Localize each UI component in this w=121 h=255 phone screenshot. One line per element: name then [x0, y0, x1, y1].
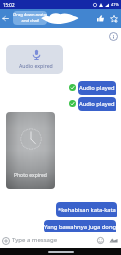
- staticText: *kehabisan kata-kata: [58, 206, 116, 214]
- staticText: Audio expired: [19, 62, 53, 69]
- button[interactable]: Send: [108, 235, 119, 246]
- button[interactable]: Audio expired: [6, 45, 63, 74]
- button[interactable]: Emoji: [96, 236, 105, 245]
- staticText: Type a message: [12, 236, 58, 244]
- button[interactable]: Like: [96, 14, 105, 23]
- button[interactable]: Audio played: [78, 97, 116, 111]
- staticText: 15:02: [3, 2, 15, 8]
- button[interactable]: Audio played: [78, 81, 116, 95]
- button[interactable]: Yang bawahnya juga dong: [44, 220, 116, 233]
- staticText: Yang bawahnya juga dong: [44, 223, 116, 231]
- button[interactable]: Photo expired: [6, 112, 55, 189]
- button[interactable]: Drag down avatar and chat!: [13, 11, 47, 25]
- staticText: 41%: [111, 2, 119, 7]
- button[interactable]: Attach: [1, 236, 10, 245]
- button[interactable]: Back: [1, 14, 10, 23]
- button[interactable]: *kehabisan kata-kata: [56, 202, 117, 217]
- staticText: Audio played: [79, 100, 115, 108]
- button[interactable]: Favourite: [109, 14, 118, 23]
- staticText: Audio played: [79, 84, 115, 92]
- staticText: Drag down avatar and chat!: [13, 12, 47, 24]
- staticText: Photo expired: [14, 172, 47, 179]
- button[interactable]: Info: [108, 31, 118, 41]
